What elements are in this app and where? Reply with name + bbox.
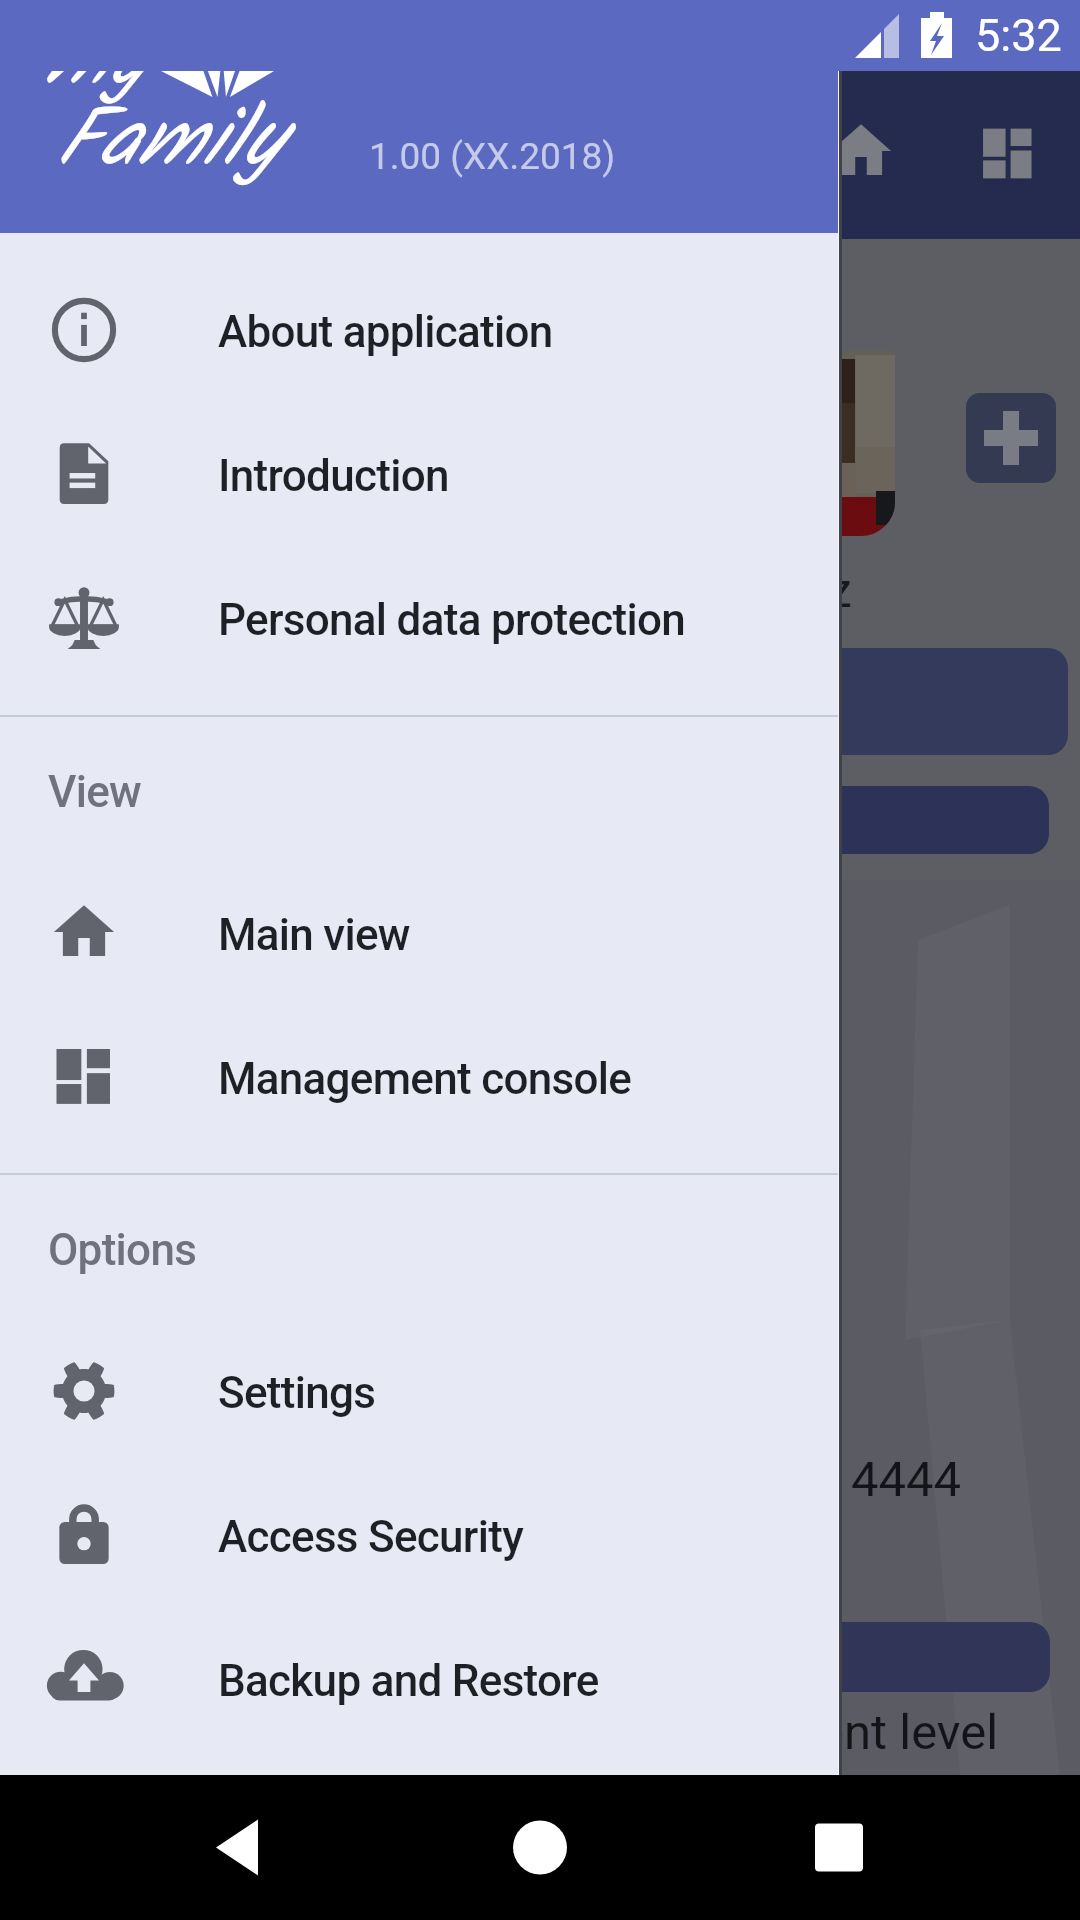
staticText: Personal data protection [218, 594, 686, 646]
button[interactable]: Add [966, 393, 1056, 483]
staticText: 4444 [851, 1451, 962, 1508]
staticText: Backup and Restore [218, 1655, 599, 1707]
staticText: 5:32 [975, 9, 1062, 62]
button[interactable]: Access Security [0, 1463, 838, 1607]
button[interactable]: Personal data protection [0, 546, 838, 690]
button[interactable]: Main view [0, 861, 838, 1005]
button[interactable]: Home [829, 120, 893, 184]
button[interactable]: Management console [0, 1005, 838, 1149]
button[interactable]: Management console [979, 125, 1037, 183]
staticText: Settings [218, 1367, 376, 1419]
staticText: z [828, 562, 852, 618]
staticText: View [48, 766, 142, 818]
staticText: Family [54, 78, 279, 209]
staticText: 1.00 (XX.2018) [369, 135, 616, 178]
staticText: Options [48, 1224, 197, 1276]
staticText: Main view [218, 909, 410, 961]
staticText: About application [218, 306, 553, 358]
button[interactable]: About application [0, 258, 838, 402]
staticText: Introduction [218, 450, 449, 502]
button[interactable]: Settings [0, 1319, 838, 1463]
staticText: my [43, 0, 145, 127]
staticText: Access Security [218, 1511, 524, 1563]
button[interactable]: Introduction [0, 402, 838, 546]
staticText: ent level [818, 1704, 999, 1761]
staticText: Management console [218, 1053, 632, 1105]
button[interactable]: Backup and Restore [0, 1607, 838, 1751]
